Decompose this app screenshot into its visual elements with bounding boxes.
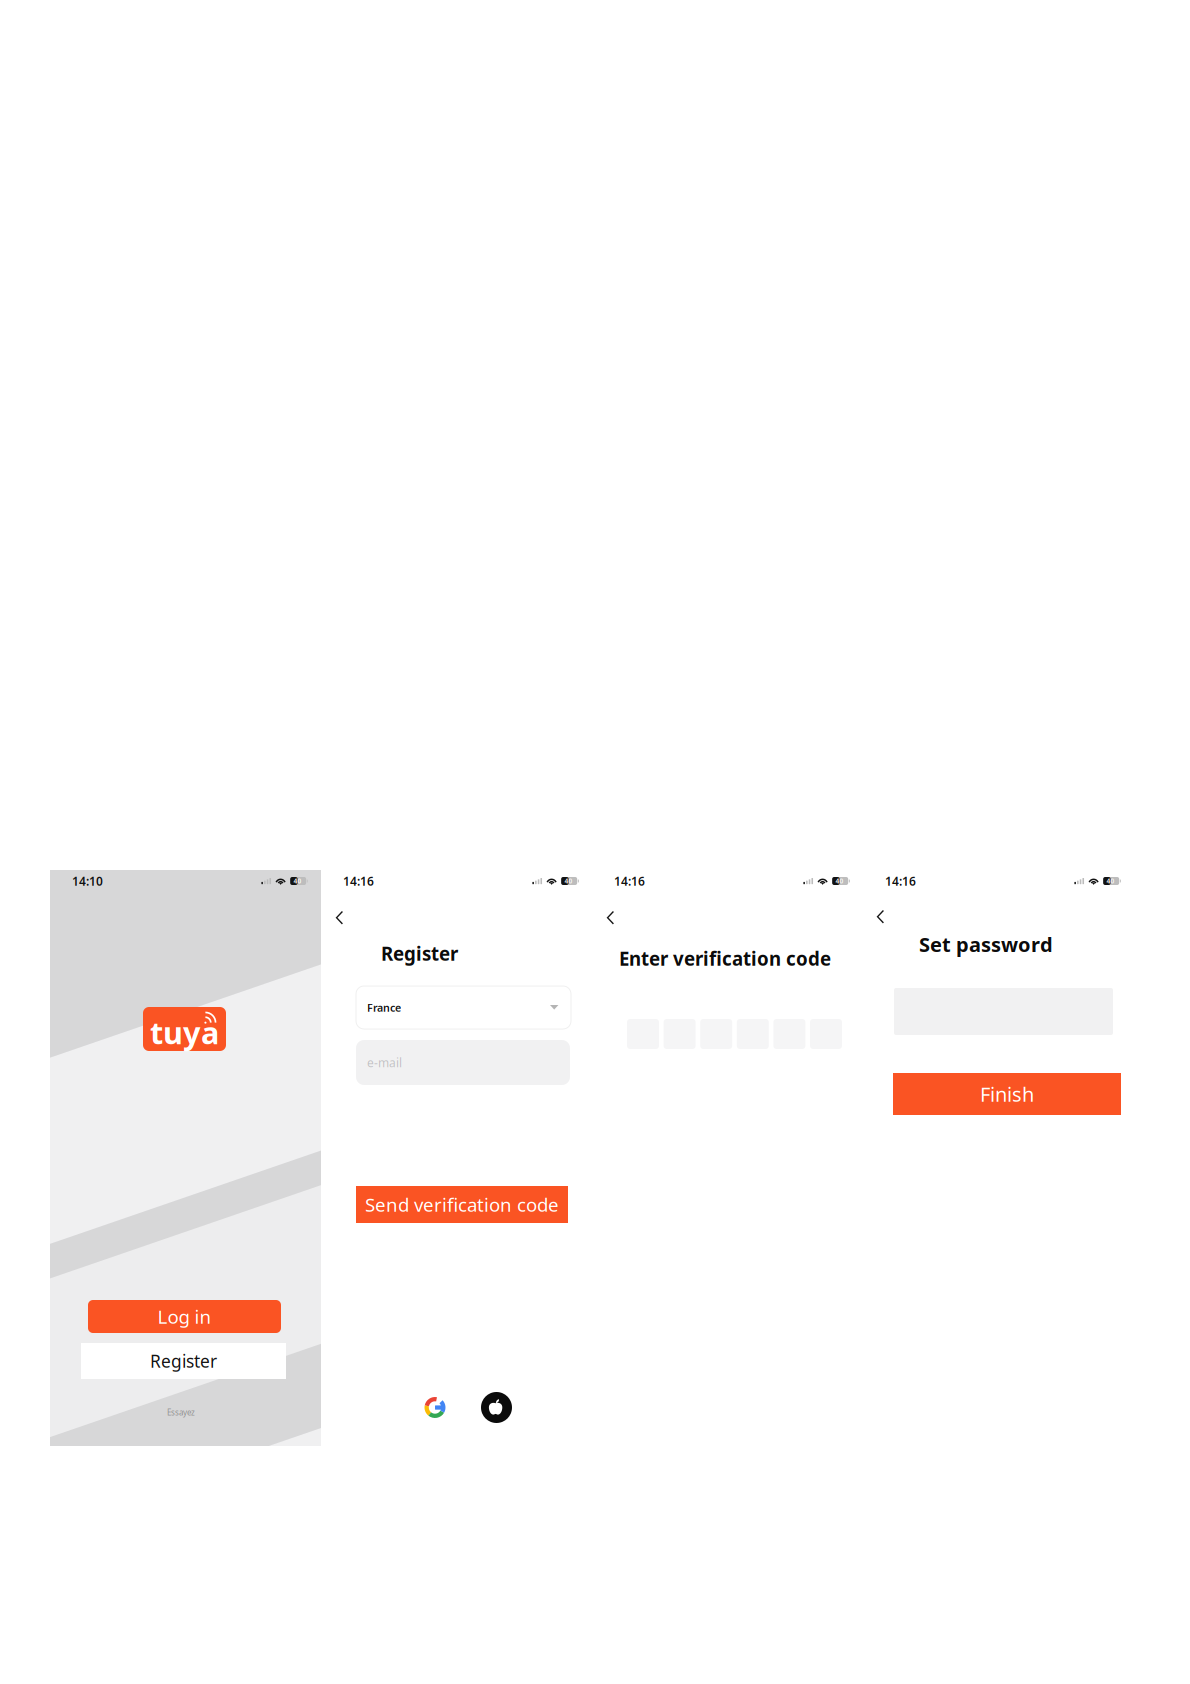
staticText: France [367,1000,401,1015]
staticText: 14:16 [885,873,916,889]
button[interactable]: Register [81,1343,286,1379]
staticText: e-mail [367,1054,402,1070]
staticText: Essayez [167,1407,195,1418]
staticText: 40 [293,877,301,885]
staticText: 14:16 [614,873,645,889]
button[interactable]: Back [601,907,619,929]
staticText: Log in [157,1304,211,1329]
button[interactable]: Finish [893,1073,1121,1115]
staticText: 14:16 [343,873,374,889]
staticText: tuya [150,1012,219,1053]
staticText: Send verification code [365,1192,559,1217]
staticText: Register [150,1349,217,1372]
button[interactable]: Continue with Google [424,1396,446,1418]
button[interactable]: Back [871,906,889,928]
button[interactable]: Log in [88,1300,281,1333]
button[interactable]: Continue with Apple [481,1392,512,1423]
button[interactable]: Back [330,907,348,929]
staticText: Enter verification code [619,946,831,971]
staticText: Set password [919,931,1053,958]
staticText: 40 [564,877,572,885]
staticText: 40 [835,877,843,885]
staticText: 14:10 [72,873,103,889]
button[interactable]: France [356,986,571,1029]
staticText: Register [381,941,458,966]
staticText: Finish [980,1081,1034,1107]
staticText: 40 [1106,877,1114,885]
button[interactable]: Send verification code [356,1186,568,1223]
